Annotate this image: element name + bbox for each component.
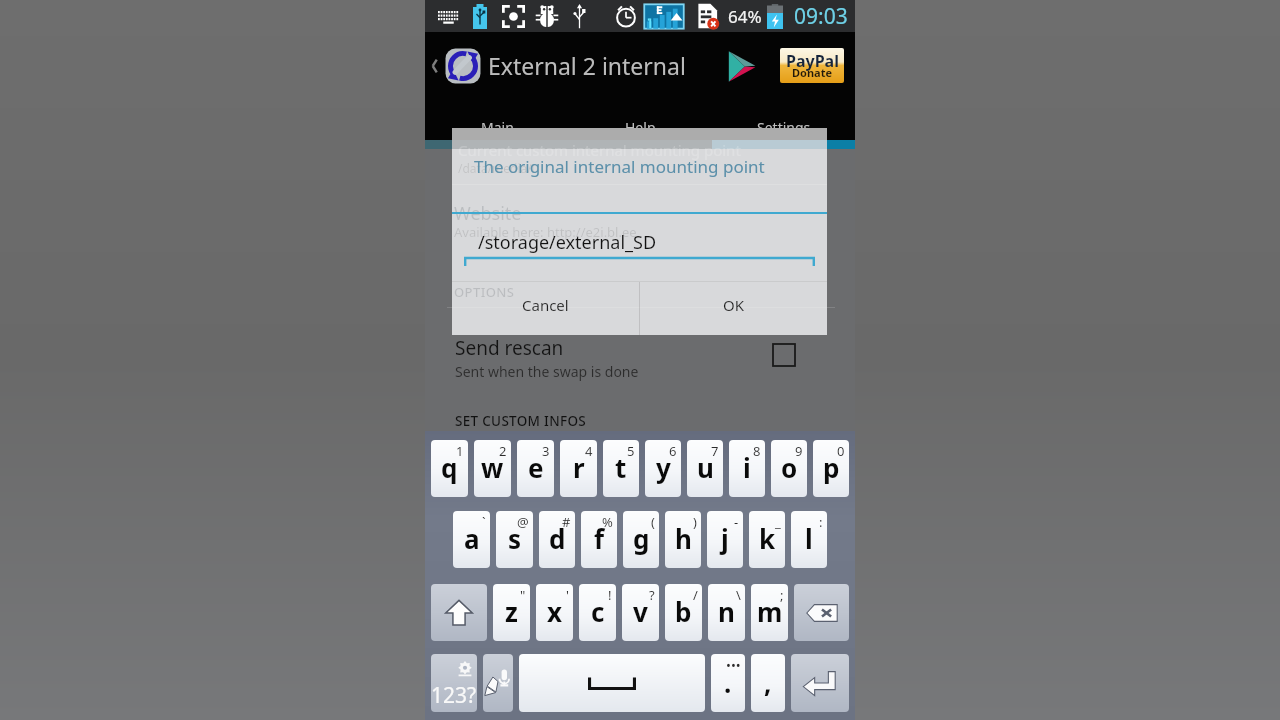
button[interactable]: Space [519, 654, 705, 712]
staticText: ( [651, 513, 655, 531]
button[interactable]: _ [749, 511, 785, 568]
button[interactable]: ; [751, 584, 788, 641]
button[interactable]: Cancel [452, 282, 639, 335]
staticText: The original internal mounting point [474, 155, 765, 178]
staticText: " [520, 586, 526, 604]
staticText: n [718, 594, 735, 629]
staticText: ) [693, 513, 697, 531]
staticText: ; [780, 586, 784, 604]
button[interactable]: Backspace [794, 584, 849, 641]
staticText: ? [649, 586, 655, 604]
button[interactable]: ? [622, 584, 659, 641]
staticText: PayPal [786, 50, 839, 72]
staticText: 7 [711, 442, 719, 460]
staticText: ••• [726, 656, 741, 674]
staticText: Available here: http://e2i.bl.ee [454, 223, 637, 241]
staticText: i [743, 450, 751, 485]
staticText: q [441, 450, 458, 485]
button[interactable]: \ [708, 584, 745, 641]
button[interactable]: 2 [474, 440, 511, 497]
button[interactable]: 3 [517, 440, 554, 497]
staticText: a [464, 521, 480, 556]
button[interactable]: OK [640, 282, 827, 335]
staticText: \ [736, 586, 741, 604]
staticText: Settings [757, 118, 811, 137]
button[interactable]: 5 [603, 440, 639, 497]
button[interactable]: Back [427, 44, 441, 88]
button[interactable]: # [539, 511, 575, 568]
staticText: u [697, 450, 714, 485]
button[interactable]: Main [425, 113, 569, 140]
button[interactable]: 0 [813, 440, 849, 497]
button[interactable]: " [493, 584, 530, 641]
staticText: _ [775, 513, 781, 531]
button[interactable]: Enter [791, 654, 849, 712]
staticText: t [615, 450, 627, 485]
button[interactable]: Google Play [718, 43, 764, 89]
staticText: 2 [499, 442, 507, 460]
staticText: c [591, 594, 605, 629]
staticText: y [656, 450, 671, 485]
button[interactable]: / [665, 584, 702, 641]
button[interactable]: , [751, 654, 785, 712]
staticText: Sent when the swap is done [455, 362, 639, 381]
button[interactable]: ` [453, 511, 490, 568]
button[interactable]: 9 [771, 440, 807, 497]
button[interactable]: - [707, 511, 743, 568]
staticText: Help [625, 118, 656, 137]
staticText: e [528, 450, 544, 485]
staticText: 123? [431, 681, 477, 710]
staticText: OPTIONS [454, 283, 515, 301]
staticText: : [819, 513, 823, 531]
staticText: l [805, 521, 813, 556]
button[interactable]: 8 [729, 440, 765, 497]
staticText: ' [566, 586, 569, 604]
staticText: / [693, 586, 698, 604]
button[interactable]: % [581, 511, 617, 568]
staticText: 3 [542, 442, 550, 460]
staticText: m [757, 594, 783, 629]
staticText: . [724, 665, 732, 700]
button[interactable]: Shift [431, 584, 487, 641]
staticText: - [734, 513, 739, 531]
button[interactable]: 4 [560, 440, 597, 497]
staticText: /data/media/0 [458, 160, 539, 176]
staticText: 0 [837, 442, 845, 460]
button[interactable]: 1 [431, 440, 468, 497]
button[interactable]: Settings [712, 113, 855, 140]
button[interactable]: PayPal Donate [780, 48, 844, 83]
button[interactable]: ! [579, 584, 616, 641]
staticText: b [675, 594, 692, 629]
staticText: v [633, 594, 648, 629]
button[interactable]: App icon [444, 47, 482, 85]
staticText: o [781, 450, 798, 485]
button[interactable]: ) [665, 511, 701, 568]
button[interactable]: Symbols [431, 654, 477, 712]
staticText: Main [481, 118, 514, 137]
button[interactable]: ••• [711, 654, 745, 712]
staticText: OK [723, 295, 745, 315]
staticText: f [594, 521, 605, 556]
staticText: w [481, 450, 504, 485]
button[interactable]: ( [623, 511, 659, 568]
button[interactable]: @ [496, 511, 533, 568]
button[interactable]: Send rescan [455, 335, 795, 381]
button[interactable]: ' [536, 584, 573, 641]
staticText: j [721, 521, 729, 556]
button[interactable]: Help [569, 113, 712, 140]
staticText: 9 [795, 442, 803, 460]
button[interactable]: Voice input [483, 654, 513, 712]
staticText: External 2 internal [488, 50, 686, 81]
staticText: Current custom internal mounting point [458, 140, 741, 160]
staticText: , [764, 665, 772, 700]
staticText: Donate [792, 65, 833, 80]
staticText: 6 [669, 442, 677, 460]
button[interactable]: 7 [687, 440, 723, 497]
staticText: Cancel [522, 295, 569, 315]
staticText: h [675, 521, 692, 556]
staticText: s [508, 521, 522, 556]
button[interactable]: : [791, 511, 827, 568]
button[interactable]: 6 [645, 440, 681, 497]
staticText: ` [482, 513, 486, 531]
staticText: r [573, 450, 585, 485]
